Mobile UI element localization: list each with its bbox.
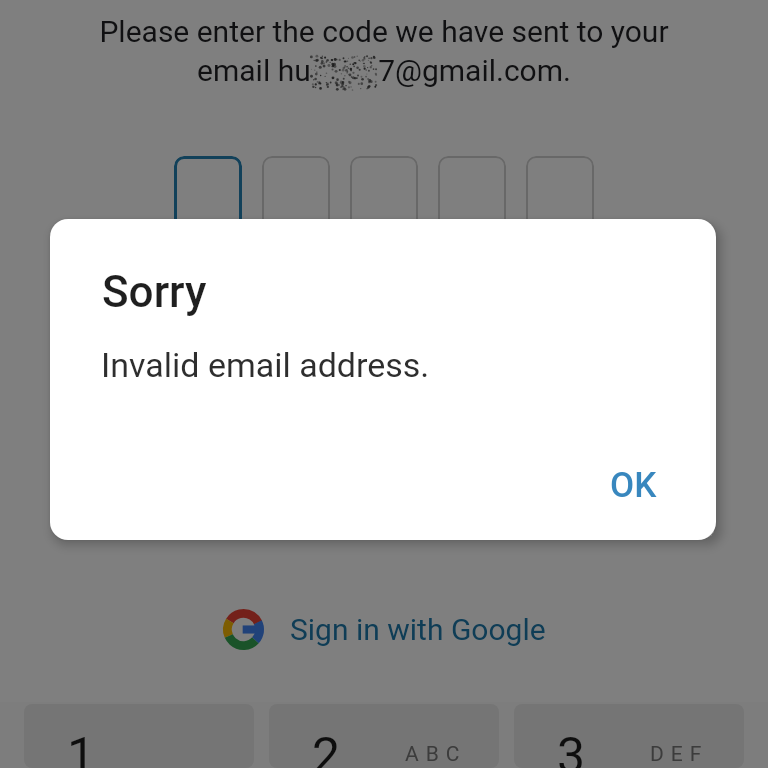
staticText: Sorry <box>102 266 207 318</box>
staticText: 3 <box>557 727 586 768</box>
staticText: 2 <box>312 727 341 768</box>
staticText: Please enter the code we have sent to yo… <box>80 14 688 88</box>
button[interactable]: 2 <box>269 704 499 768</box>
staticText: DEF <box>650 742 709 767</box>
button[interactable]: Code digit 1 <box>174 156 242 240</box>
button[interactable]: Code digit 2 <box>262 156 330 240</box>
button[interactable]: Code digit 5 <box>526 156 594 240</box>
staticText: 1 <box>67 727 96 768</box>
staticText: Sign in with Google <box>290 612 546 647</box>
staticText: OK <box>610 465 657 506</box>
button[interactable]: Code digit 4 <box>438 156 506 240</box>
button[interactable]: Sign in with Google <box>0 609 768 650</box>
button[interactable]: 3 <box>514 704 744 768</box>
button[interactable]: OK <box>594 451 673 520</box>
button[interactable]: 1 <box>24 704 254 768</box>
button[interactable]: Dismiss dialog <box>0 0 768 768</box>
button[interactable]: Code digit 3 <box>350 156 418 240</box>
staticText: ABC <box>405 742 467 767</box>
staticText: Invalid email address. <box>101 345 430 385</box>
